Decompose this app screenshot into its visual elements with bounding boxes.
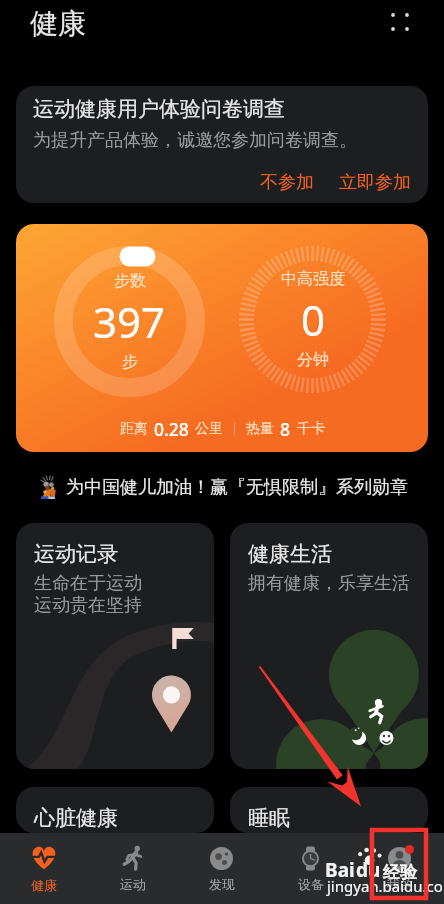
button[interactable]: 健康 <box>0 833 88 904</box>
staticText: 为中国健儿加油！赢『无惧限制』系列勋章 <box>66 476 408 499</box>
staticText: 步数 <box>114 271 146 291</box>
staticText: 运动记录 <box>34 541 118 567</box>
staticText: 不参加 <box>260 171 314 194</box>
staticText: 0 <box>301 291 326 348</box>
staticText: 步 <box>122 352 138 372</box>
button[interactable]: 不参加 <box>256 167 318 198</box>
button[interactable]: 立即参加 <box>335 167 415 198</box>
staticText: 运动健康用户体验问卷调查 <box>33 96 285 122</box>
staticText: 运动 <box>120 876 146 892</box>
staticText: 为提升产品体验，诚邀您参加问卷调查。 <box>33 129 357 152</box>
staticText: 睡眠 <box>248 805 290 831</box>
staticText: 中高强度 <box>281 269 345 289</box>
staticText: Bai <box>325 857 355 883</box>
staticText: 8 <box>280 417 291 441</box>
staticText: 千卡 <box>297 420 325 438</box>
button[interactable]: 步数 <box>16 224 428 452</box>
staticText: 距离 <box>120 420 148 438</box>
staticText: 健康 <box>30 6 86 41</box>
staticText: 公里 <box>195 420 223 438</box>
staticText: 我的 <box>387 876 413 892</box>
button[interactable]: 运动健康用户体验问卷调查 <box>16 86 428 203</box>
staticText: 热量 <box>246 420 274 438</box>
staticText: 拥有健康，乐享生活 <box>248 572 410 595</box>
button[interactable]: 运动 <box>88 833 177 904</box>
button[interactable]: 运动记录 <box>16 523 214 769</box>
button[interactable]: 发现 <box>177 833 266 904</box>
staticText: 设备 <box>298 876 324 892</box>
staticText: 健康 <box>31 877 57 893</box>
button[interactable]: 睡眠 <box>230 787 428 833</box>
staticText: 397 <box>93 293 166 350</box>
button[interactable]: 我的 <box>355 833 444 904</box>
staticText: 心脏健康 <box>34 805 118 831</box>
button[interactable]: 设备 <box>266 833 355 904</box>
staticText: 生命在于运动 运动贵在坚持 <box>34 572 142 616</box>
button[interactable]: 心脏健康 <box>16 787 214 833</box>
button[interactable]: More options <box>381 3 419 41</box>
button[interactable]: 健康生活 <box>230 523 428 769</box>
staticText: 立即参加 <box>339 171 411 194</box>
staticText: 分钟 <box>297 350 329 370</box>
staticText: 发现 <box>209 876 235 892</box>
button[interactable]: 为中国健儿加油！赢『无惧限制』系列勋章 <box>0 452 444 523</box>
staticText: 经验 <box>383 862 417 883</box>
staticText: 0.28 <box>154 417 189 441</box>
staticText: 健康生活 <box>248 541 332 567</box>
staticText: jingyan.baidu.com <box>327 876 444 896</box>
staticText: du <box>356 857 381 883</box>
